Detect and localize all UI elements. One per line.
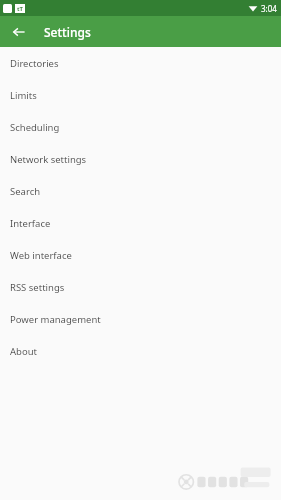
staticText: Directories [10, 57, 59, 70]
button[interactable]: Directories [0, 47, 281, 79]
staticText: Network settings [10, 153, 87, 166]
button[interactable]: Interface [0, 207, 281, 239]
button[interactable]: Power management [0, 303, 281, 335]
staticText: Power management [10, 313, 101, 326]
staticText: Limits [10, 89, 37, 102]
staticText: Interface [10, 217, 51, 230]
staticText: 3:04 [261, 3, 277, 14]
button[interactable]: Back [7, 20, 31, 44]
button[interactable]: Limits [0, 79, 281, 111]
staticText: RSS settings [10, 281, 65, 294]
staticText: Settings [44, 24, 91, 40]
button[interactable]: Scheduling [0, 111, 281, 143]
button[interactable]: About [0, 335, 281, 367]
button[interactable]: Network settings [0, 143, 281, 175]
staticText: Web interface [10, 249, 72, 262]
button[interactable]: Web interface [0, 239, 281, 271]
button[interactable]: RSS settings [0, 271, 281, 303]
staticText: About [10, 345, 37, 358]
staticText: tT [17, 5, 24, 13]
staticText: Search [10, 185, 41, 198]
button[interactable]: Search [0, 175, 281, 207]
staticText: Scheduling [10, 121, 60, 134]
